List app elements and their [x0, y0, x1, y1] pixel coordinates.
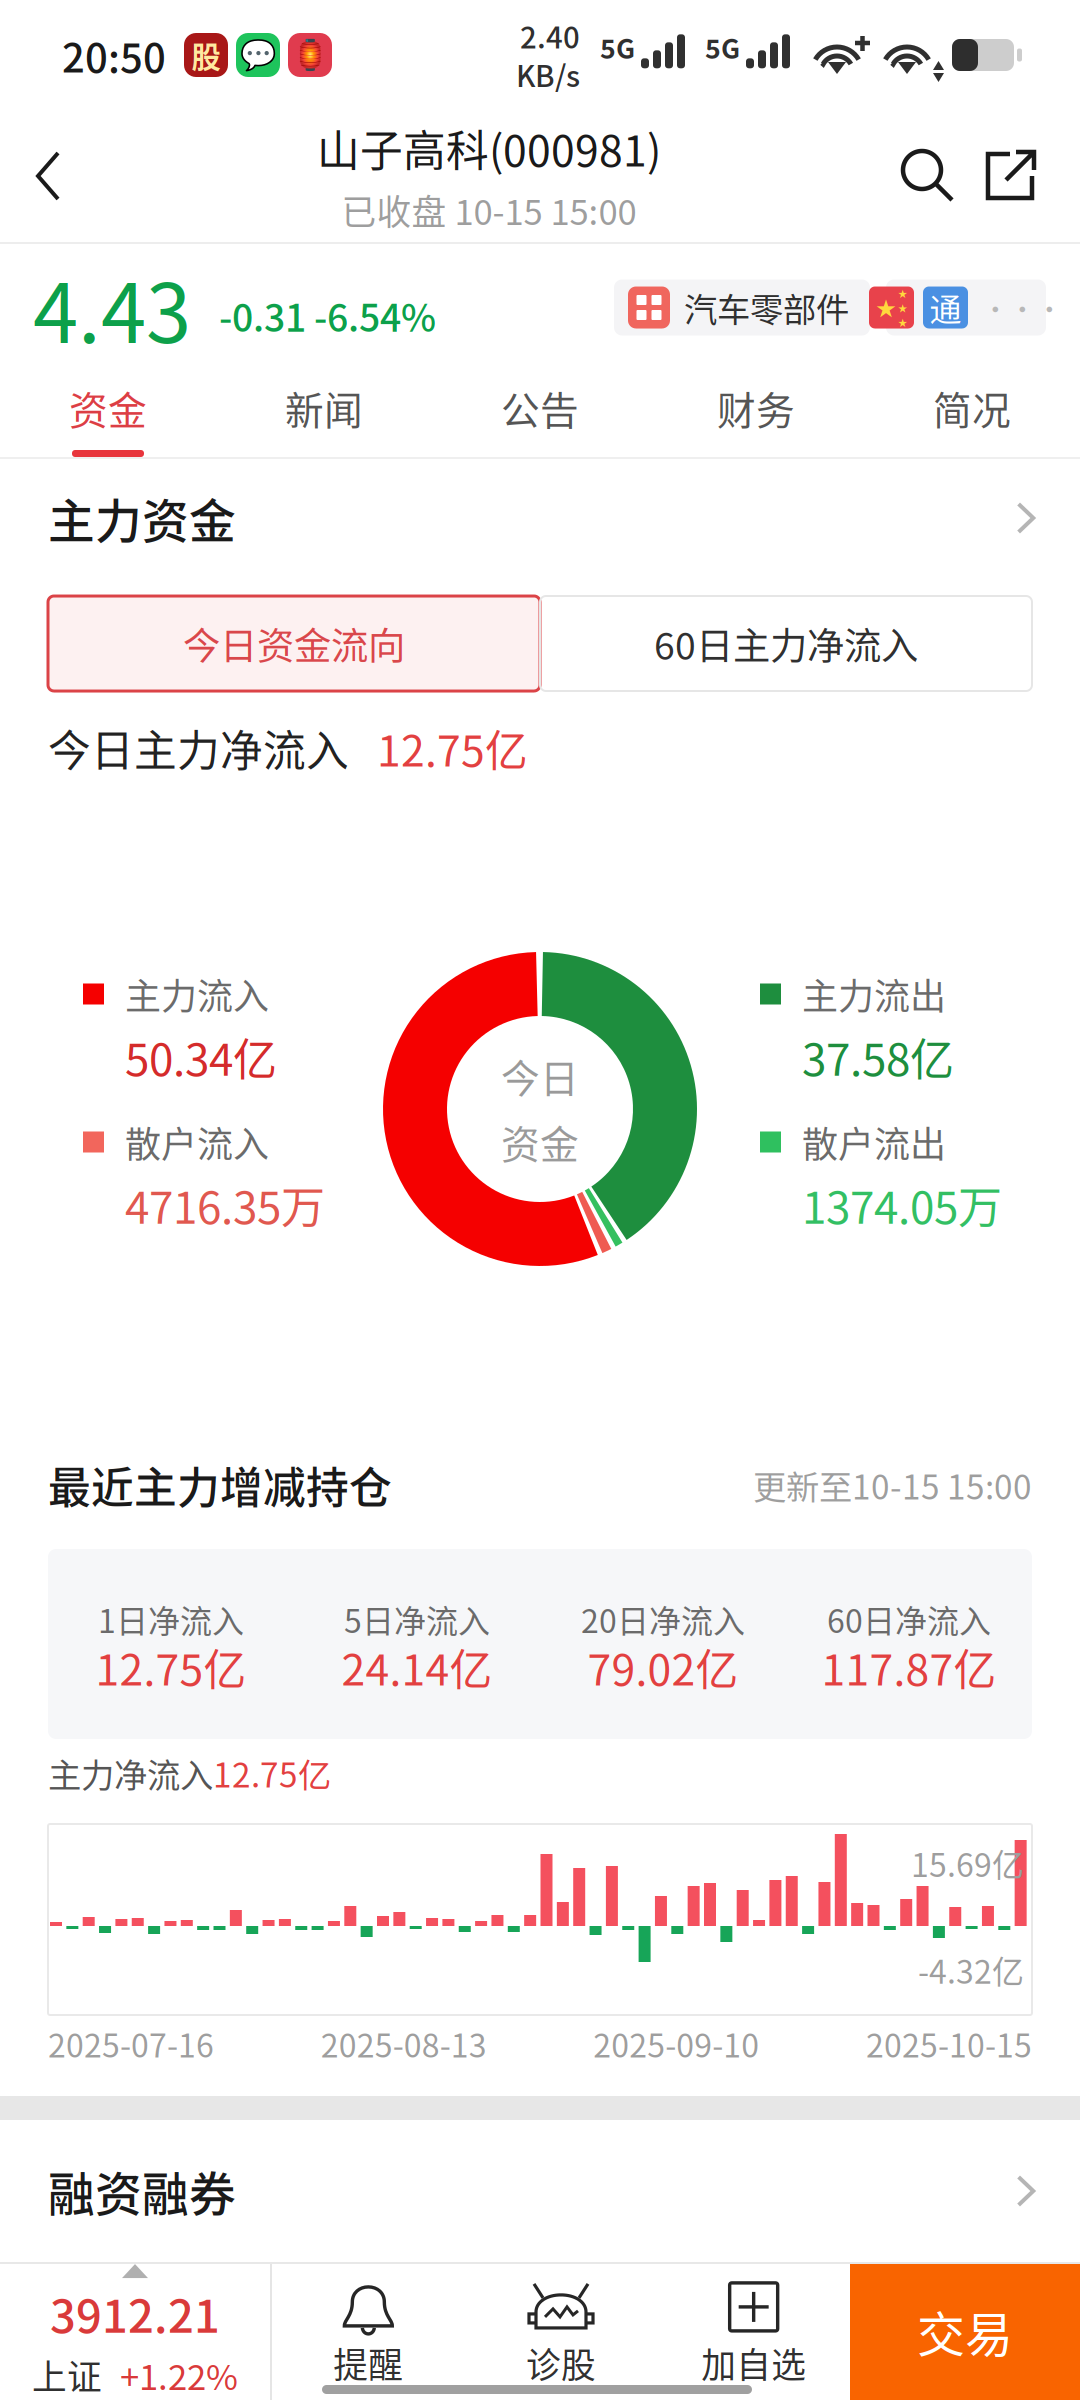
staticText: 20日净流入: [581, 1596, 745, 1642]
staticText: 今日资金流向: [183, 616, 405, 671]
staticText: 上证: [32, 2350, 102, 2400]
staticText: ★: [876, 293, 896, 322]
staticText: 🏮: [291, 38, 328, 72]
staticText: 财务: [717, 380, 795, 436]
staticText: 79.02亿: [587, 1636, 738, 1698]
staticText: 15.69亿: [911, 1840, 1024, 1886]
button[interactable]: 资金: [0, 371, 216, 457]
staticText: -4.32亿: [918, 1947, 1024, 1993]
staticText: 最近主力增减持仓: [48, 1454, 392, 1516]
button[interactable]: 新闻: [216, 371, 432, 457]
button[interactable]: 交易: [850, 2262, 1080, 2400]
staticText: 1日净流入: [98, 1596, 244, 1642]
staticText: 3912.21: [50, 2280, 220, 2346]
staticText: 4716.35万: [125, 1173, 325, 1236]
staticText: 新闻: [285, 380, 363, 436]
staticText: ★: [898, 315, 907, 329]
staticText: +1.22%: [120, 2350, 238, 2400]
staticText: 5日净流入: [344, 1596, 490, 1642]
staticText: 2025-10-15: [866, 2020, 1032, 2067]
staticText: -0.31 -6.54%: [219, 288, 436, 343]
staticText: 公告: [501, 380, 579, 436]
button[interactable]: 财务: [648, 371, 864, 457]
staticText: 24.14亿: [341, 1636, 492, 1698]
staticText: 交易: [917, 2296, 1013, 2366]
staticText: 主力流出: [802, 968, 946, 1020]
staticText: 今日: [501, 1048, 579, 1104]
staticText: 散户流出: [802, 1116, 946, 1168]
button[interactable]: 公告: [432, 371, 648, 457]
staticText: 37.58亿: [802, 1025, 954, 1088]
button[interactable]: 简况: [864, 371, 1080, 457]
staticText: 12.75亿: [95, 1636, 246, 1698]
staticText: 117.87亿: [821, 1636, 996, 1698]
staticText: 今日主力净流入: [48, 717, 349, 779]
staticText: 通: [929, 284, 961, 331]
staticText: 主力资金: [48, 484, 236, 552]
staticText: 💬: [239, 38, 276, 72]
staticText: •••: [982, 288, 1063, 327]
button[interactable]: 诊股: [465, 2264, 657, 2400]
button[interactable]: 汽车零部件: [614, 279, 870, 335]
staticText: 60日主力净流入: [654, 616, 918, 671]
button[interactable]: 主力资金: [0, 459, 1080, 577]
staticText: 2025-08-13: [321, 2020, 487, 2067]
staticText: 2.40: [520, 14, 580, 57]
staticText: 2025-07-16: [48, 2020, 214, 2067]
staticText: 1374.05万: [802, 1173, 1002, 1236]
staticText: 散户流入: [125, 1116, 269, 1168]
button[interactable]: Back: [0, 113, 96, 239]
staticText: 20:50: [62, 26, 166, 84]
staticText: 诊股: [526, 2338, 596, 2388]
button[interactable]: Search: [882, 114, 980, 238]
staticText: 简况: [933, 380, 1011, 436]
button[interactable]: 提醒: [272, 2264, 465, 2400]
staticText: 加自选: [701, 2338, 806, 2388]
button[interactable]: 60日主力净流入: [540, 596, 1032, 691]
staticText: 5G: [600, 28, 635, 66]
staticText: 汽车零部件: [684, 283, 849, 332]
staticText: 50.34亿: [125, 1025, 277, 1088]
staticText: ★: [898, 301, 907, 314]
staticText: 5G: [705, 28, 740, 66]
staticText: 12.75亿: [377, 717, 528, 779]
staticText: ★: [898, 286, 907, 300]
button[interactable]: Share: [980, 112, 1080, 240]
staticText: 山子高科(000981): [317, 117, 661, 179]
staticText: 60日净流入: [827, 1596, 991, 1642]
staticText: 股: [191, 34, 220, 76]
staticText: 更新至10-15 15:00: [753, 1461, 1032, 1509]
staticText: 已收盘 10-15 15:00: [341, 185, 636, 235]
staticText: KB/s: [516, 53, 580, 95]
staticText: 资金: [69, 380, 147, 436]
staticText: 融资融券: [48, 2157, 236, 2225]
staticText: 资金: [501, 1114, 579, 1170]
staticText: 2025-09-10: [593, 2020, 759, 2067]
staticText: 4.43: [33, 249, 191, 366]
staticText: 提醒: [333, 2338, 403, 2388]
button[interactable]: 融资融券: [0, 2120, 1080, 2262]
button[interactable]: 加自选: [657, 2264, 850, 2400]
staticText: 主力净流入: [48, 1749, 213, 1797]
staticText: 12.75亿: [213, 1749, 331, 1797]
staticText: 主力流入: [125, 968, 269, 1020]
button[interactable]: 今日资金流向: [48, 596, 540, 691]
